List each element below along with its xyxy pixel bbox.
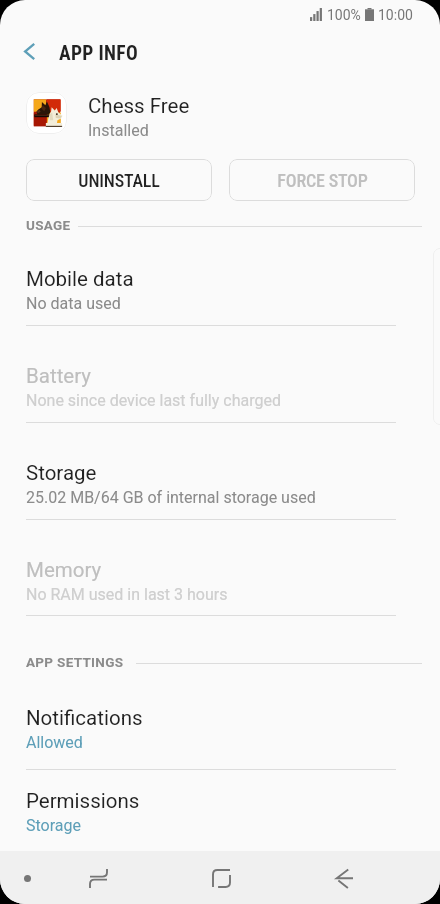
staticText: Mobile data: [26, 267, 134, 291]
button[interactable]: UNINSTALL: [26, 159, 212, 201]
button[interactable]: [0, 346, 440, 422]
staticText: Battery: [26, 364, 92, 388]
button[interactable]: Keyboard: [14, 865, 40, 891]
button[interactable]: [0, 771, 440, 853]
button[interactable]: [0, 249, 440, 325]
staticText: Allowed: [26, 733, 83, 752]
staticText: Memory: [26, 558, 102, 582]
button[interactable]: [0, 540, 440, 615]
button[interactable]: Home: [200, 857, 242, 899]
staticText: Notifications: [26, 706, 143, 730]
button[interactable]: FORCE STOP: [229, 159, 415, 201]
staticText: UNINSTALL: [78, 170, 160, 191]
staticText: USAGE: [26, 217, 71, 233]
button[interactable]: [0, 688, 440, 770]
button[interactable]: [0, 443, 440, 519]
staticText: No data used: [26, 294, 121, 313]
staticText: APP SETTINGS: [26, 654, 124, 670]
staticText: 25.02 MB/64 GB of internal storage used: [26, 488, 316, 507]
staticText: 10:00: [378, 7, 413, 23]
staticText: Storage: [26, 461, 97, 485]
staticText: Permissions: [26, 789, 140, 813]
button[interactable]: Back: [323, 857, 365, 899]
staticText: None since device last fully charged: [26, 391, 281, 410]
staticText: APP INFO: [59, 42, 138, 65]
staticText: Installed: [88, 121, 149, 140]
staticText: 100%: [327, 7, 361, 23]
staticText: FORCE STOP: [277, 170, 368, 191]
button[interactable]: Recent apps: [77, 857, 119, 899]
button[interactable]: Back: [8, 30, 50, 72]
staticText: Storage: [26, 816, 81, 835]
staticText: Chess Free: [88, 94, 190, 118]
staticText: No RAM used in last 3 hours: [26, 585, 228, 604]
